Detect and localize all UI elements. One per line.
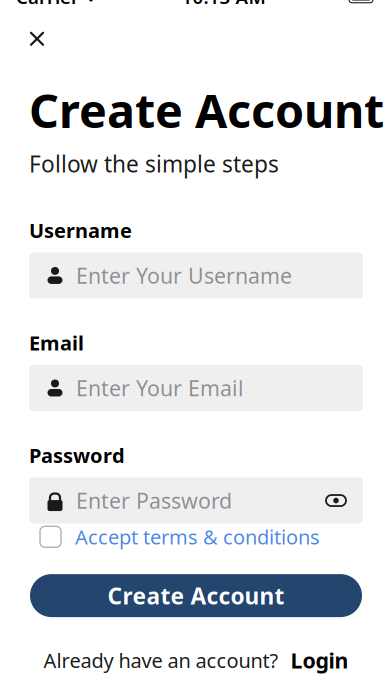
staticText: Enter Your Username — [76, 261, 292, 290]
staticText: Accept terms & conditions — [75, 523, 320, 550]
button[interactable]: Accept terms & conditions — [40, 523, 352, 550]
staticText: Already have an account? — [43, 647, 278, 673]
staticText: Username — [29, 217, 132, 243]
staticText: Enter Password — [76, 486, 232, 515]
button[interactable]: Login — [290, 646, 348, 674]
button[interactable]: Close — [15, 21, 59, 57]
staticText: Carrier — [16, 0, 79, 9]
staticText: Follow the simple steps — [29, 149, 279, 179]
staticText: Email — [29, 329, 84, 356]
staticText: Password — [29, 442, 125, 469]
staticText: 10:13 AM — [181, 0, 265, 9]
staticText: Login — [290, 646, 348, 674]
button[interactable]: Create Account — [30, 574, 362, 617]
staticText: Create Account — [107, 581, 284, 611]
button[interactable]: Show password — [325, 489, 347, 511]
staticText: Enter Your Email — [76, 374, 244, 402]
staticText: Create Account — [29, 79, 384, 141]
